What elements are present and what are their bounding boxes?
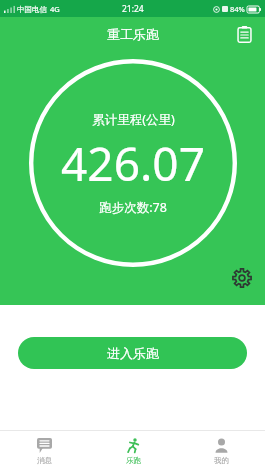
staticText: 21:24 bbox=[122, 3, 144, 15]
staticText: 进入乐跑 bbox=[107, 345, 159, 361]
staticText: 84% bbox=[230, 4, 245, 14]
staticText: 426.07 bbox=[61, 132, 205, 195]
staticText: 我的 bbox=[214, 456, 229, 465]
button[interactable]: 乐跑 bbox=[89, 431, 177, 471]
button[interactable]: 我的 bbox=[177, 431, 265, 471]
staticText: 跑步次数:78 bbox=[99, 199, 167, 216]
button[interactable]: 进入乐跑 bbox=[18, 337, 247, 369]
button[interactable]: Records bbox=[231, 21, 257, 47]
staticText: 中国电信 bbox=[17, 5, 47, 14]
staticText: 乐跑 bbox=[126, 456, 141, 465]
button[interactable]: 消息 bbox=[0, 431, 89, 471]
staticText: 4G bbox=[50, 4, 60, 14]
staticText: 累计里程(公里) bbox=[92, 111, 175, 128]
staticText: 消息 bbox=[37, 456, 52, 465]
button[interactable]: Settings bbox=[229, 265, 255, 291]
staticText: 重工乐跑 bbox=[107, 26, 159, 42]
